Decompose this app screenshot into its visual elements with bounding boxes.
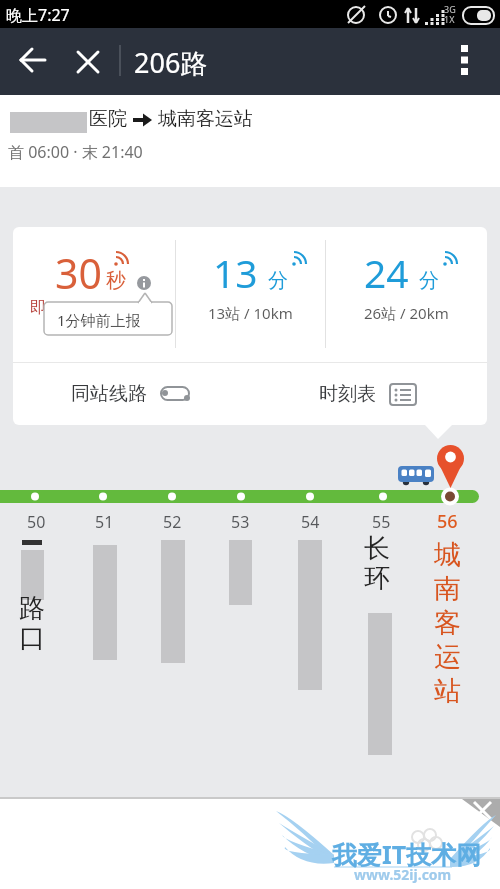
staticText: 秒 bbox=[106, 268, 126, 293]
staticText: 医院 bbox=[89, 107, 127, 131]
button[interactable]: 时刻表 bbox=[250, 363, 487, 425]
staticText: 13站 / 10km bbox=[208, 303, 293, 323]
staticText: 路 bbox=[19, 592, 45, 625]
staticText: 56 bbox=[437, 509, 458, 534]
staticText: 环 bbox=[364, 562, 390, 595]
staticText: 52 bbox=[163, 511, 182, 533]
staticText: 客 bbox=[434, 606, 461, 640]
staticText: 1分钟前上报 bbox=[57, 310, 141, 330]
staticText: 55 bbox=[372, 511, 391, 533]
staticText: 首 06:00 · 末 21:40 bbox=[8, 141, 143, 163]
staticText: 1X bbox=[444, 13, 455, 25]
staticText: 时刻表 bbox=[319, 382, 376, 406]
staticText: 13 bbox=[213, 246, 258, 299]
staticText: 26站 / 20km bbox=[364, 303, 449, 323]
staticText: 口 bbox=[19, 622, 45, 655]
staticText: 54 bbox=[301, 511, 320, 533]
staticText: 分 bbox=[419, 268, 439, 293]
staticText: 晚上7:27 bbox=[6, 4, 70, 26]
button[interactable] bbox=[66, 38, 110, 86]
staticText: 3G bbox=[444, 3, 456, 15]
staticText: 53 bbox=[231, 511, 250, 533]
button[interactable]: 同站线路 bbox=[13, 363, 250, 425]
staticText: 分 bbox=[268, 268, 288, 293]
button[interactable] bbox=[458, 799, 500, 829]
staticText: 24 bbox=[364, 246, 409, 299]
staticText: 206路 bbox=[134, 44, 208, 81]
staticText: 运 bbox=[434, 640, 461, 674]
staticText: 南 bbox=[434, 572, 461, 606]
staticText: 同站线路 bbox=[71, 382, 147, 406]
button[interactable] bbox=[137, 276, 151, 290]
staticText: 我爱IT技术网 bbox=[332, 837, 482, 871]
button[interactable] bbox=[8, 38, 58, 86]
staticText: 50 bbox=[27, 511, 46, 533]
staticText: 长 bbox=[364, 532, 390, 565]
staticText: 站 bbox=[434, 674, 461, 708]
button[interactable] bbox=[444, 38, 492, 86]
staticText: 城 bbox=[434, 538, 461, 572]
staticText: 城南客运站 bbox=[158, 107, 253, 131]
staticText: 即 bbox=[30, 298, 46, 318]
staticText: 51 bbox=[95, 511, 114, 533]
staticText: www.52ij.com bbox=[354, 865, 452, 884]
staticText: 30 bbox=[55, 245, 102, 301]
